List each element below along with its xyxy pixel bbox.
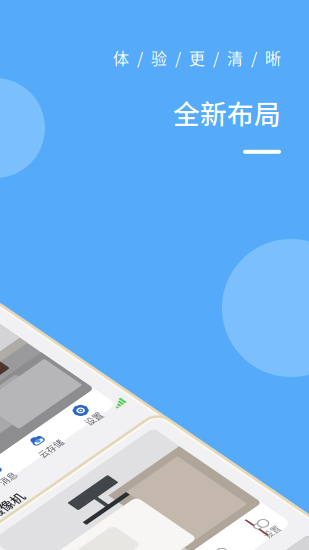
staticText: 全新布局	[173, 93, 281, 132]
staticText: 体 / 验 / 更 / 清 / 晰	[113, 46, 281, 69]
